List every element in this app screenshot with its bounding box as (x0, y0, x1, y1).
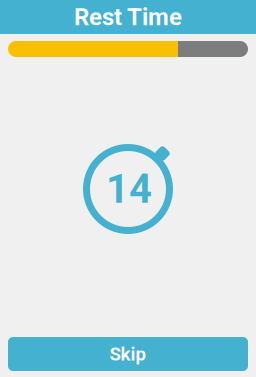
staticText: Skip (109, 343, 146, 365)
button[interactable]: Skip (8, 337, 248, 371)
staticText: Rest Time (74, 3, 182, 31)
staticText: 14 (106, 166, 152, 212)
